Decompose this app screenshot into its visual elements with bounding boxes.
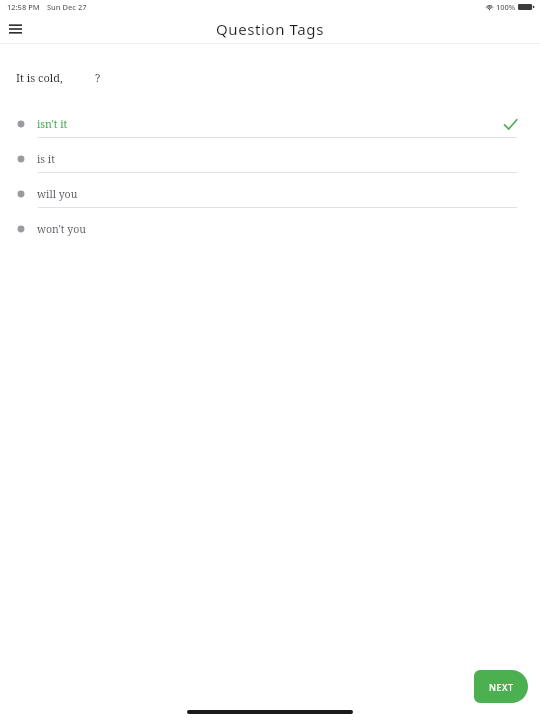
button[interactable]: NEXT — [474, 670, 528, 703]
staticText: NEXT — [489, 681, 514, 693]
button[interactable]: isn't it — [0, 111, 540, 146]
staticText: Sun Dec 27 — [47, 2, 87, 12]
staticText: 12:58 PM — [7, 2, 40, 12]
staticText: is it — [37, 152, 55, 166]
staticText: It is cold, — [16, 70, 63, 85]
button[interactable]: is it — [0, 146, 540, 181]
staticText: won't you — [37, 222, 86, 236]
staticText: 100% — [496, 2, 516, 12]
button[interactable]: will you — [0, 181, 540, 216]
button[interactable]: won't you — [0, 216, 540, 242]
button[interactable]: Open navigation menu — [0, 14, 30, 43]
staticText: isn't it — [37, 117, 68, 131]
staticText: ? — [95, 70, 101, 85]
staticText: will you — [37, 187, 78, 201]
staticText: Question Tags — [216, 19, 324, 39]
